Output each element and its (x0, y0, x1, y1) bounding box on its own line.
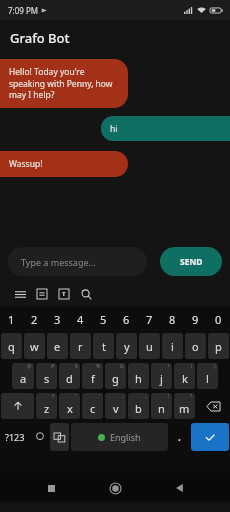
button[interactable]: Hello! Today you're speaking with Penny,… (0, 59, 128, 108)
staticText: l (206, 371, 209, 386)
staticText: q (8, 339, 15, 354)
button[interactable]: 8 (161, 310, 184, 328)
staticText: j (160, 371, 163, 386)
staticText: T (62, 290, 66, 298)
button[interactable]: Text style (53, 283, 75, 305)
button[interactable]: 9 (184, 310, 207, 328)
staticText: c (90, 401, 96, 416)
button[interactable]: hi (101, 116, 230, 141)
button[interactable]: 0 (207, 310, 230, 328)
button[interactable]: t (93, 333, 114, 359)
staticText: i (171, 339, 174, 354)
button[interactable]: 1 (0, 310, 23, 328)
staticText: ? (190, 393, 193, 400)
button[interactable]: Wassup! (0, 151, 128, 177)
button[interactable]: Recent apps (37, 474, 65, 502)
staticText: . (178, 430, 181, 444)
button[interactable]: ; (128, 393, 149, 419)
staticText: ' (99, 393, 101, 400)
button[interactable]: Emoji (31, 423, 48, 451)
button[interactable]: " (59, 393, 80, 419)
button[interactable]: w (24, 333, 45, 359)
staticText: k (182, 371, 188, 386)
staticText: 7 (146, 312, 153, 327)
button[interactable]: Home (101, 474, 129, 502)
button[interactable]: # (36, 363, 57, 389)
staticText: p (215, 339, 222, 354)
staticText: Hello! Today you're speaking with Penny,… (9, 66, 121, 101)
staticText: Wassup! (9, 158, 43, 170)
staticText: ?123 (5, 431, 25, 443)
staticText: r (78, 339, 83, 354)
staticText: w (30, 339, 39, 354)
staticText: b (135, 401, 142, 416)
button[interactable]: - (128, 363, 149, 389)
staticText: " (75, 393, 78, 400)
staticText: m (179, 401, 190, 416)
staticText: # (51, 363, 55, 370)
button[interactable]: Backspace (197, 393, 229, 419)
button[interactable]: $ (59, 363, 80, 389)
staticText: 1 (8, 312, 15, 327)
staticText: 4 (77, 312, 84, 327)
button[interactable]: & (105, 363, 126, 389)
button[interactable]: Enter (191, 423, 229, 451)
button[interactable]: . (170, 423, 189, 451)
staticText: 2 (31, 312, 38, 327)
button[interactable]: 3 (46, 310, 69, 328)
button[interactable]: u (139, 333, 160, 359)
button[interactable]: 6 (115, 310, 138, 328)
button[interactable]: ' (82, 393, 103, 419)
button[interactable]: ? (174, 393, 195, 419)
staticText: s (44, 371, 50, 386)
staticText: v (113, 401, 119, 416)
staticText: h (135, 371, 142, 386)
button[interactable]: Search (75, 283, 97, 305)
button[interactable]: 5 (92, 310, 115, 328)
button[interactable]: Back (166, 474, 194, 502)
staticText: - (145, 363, 147, 370)
button[interactable]: ( (174, 363, 195, 389)
button[interactable]: i (162, 333, 183, 359)
staticText: u (146, 339, 153, 354)
button[interactable]: p (208, 333, 229, 359)
staticText: + (167, 363, 170, 370)
staticText: ( (191, 363, 193, 370)
staticText: % (96, 363, 101, 370)
staticText: Grafo Bot (10, 29, 70, 47)
button[interactable]: ?123 (1, 423, 29, 451)
staticText: f (91, 371, 95, 386)
button[interactable]: Shift (1, 393, 34, 419)
button[interactable]: Menu (9, 283, 31, 305)
button[interactable]: e (47, 333, 68, 359)
button[interactable]: @ (12, 363, 34, 389)
staticText: ) (214, 363, 216, 370)
staticText: & (120, 363, 124, 370)
staticText: SEND (180, 256, 203, 268)
button[interactable]: ) (197, 363, 218, 389)
staticText: x (67, 401, 73, 416)
button[interactable]: + (151, 363, 172, 389)
button[interactable]: * (36, 393, 57, 419)
button[interactable]: 4 (69, 310, 92, 328)
button[interactable]: Options (31, 283, 53, 305)
button[interactable]: English (71, 423, 168, 451)
button[interactable]: 2 (23, 310, 46, 328)
button[interactable]: o (185, 333, 206, 359)
staticText: 7:09 PM (8, 5, 39, 16)
button[interactable]: r (70, 333, 91, 359)
button[interactable]: Type a message... (8, 247, 147, 276)
staticText: e (54, 339, 61, 354)
button[interactable]: % (82, 363, 103, 389)
button[interactable]: 7 (138, 310, 161, 328)
button[interactable]: Change language (50, 423, 69, 451)
staticText: o (192, 339, 199, 354)
button[interactable]: q (1, 333, 22, 359)
button[interactable]: : (105, 393, 126, 419)
staticText: ; (145, 393, 147, 400)
staticText: $ (75, 363, 78, 370)
button[interactable]: SEND (160, 247, 222, 276)
button[interactable]: y (116, 333, 137, 359)
staticText: 3 (54, 312, 61, 327)
button[interactable]: ! (151, 393, 172, 419)
